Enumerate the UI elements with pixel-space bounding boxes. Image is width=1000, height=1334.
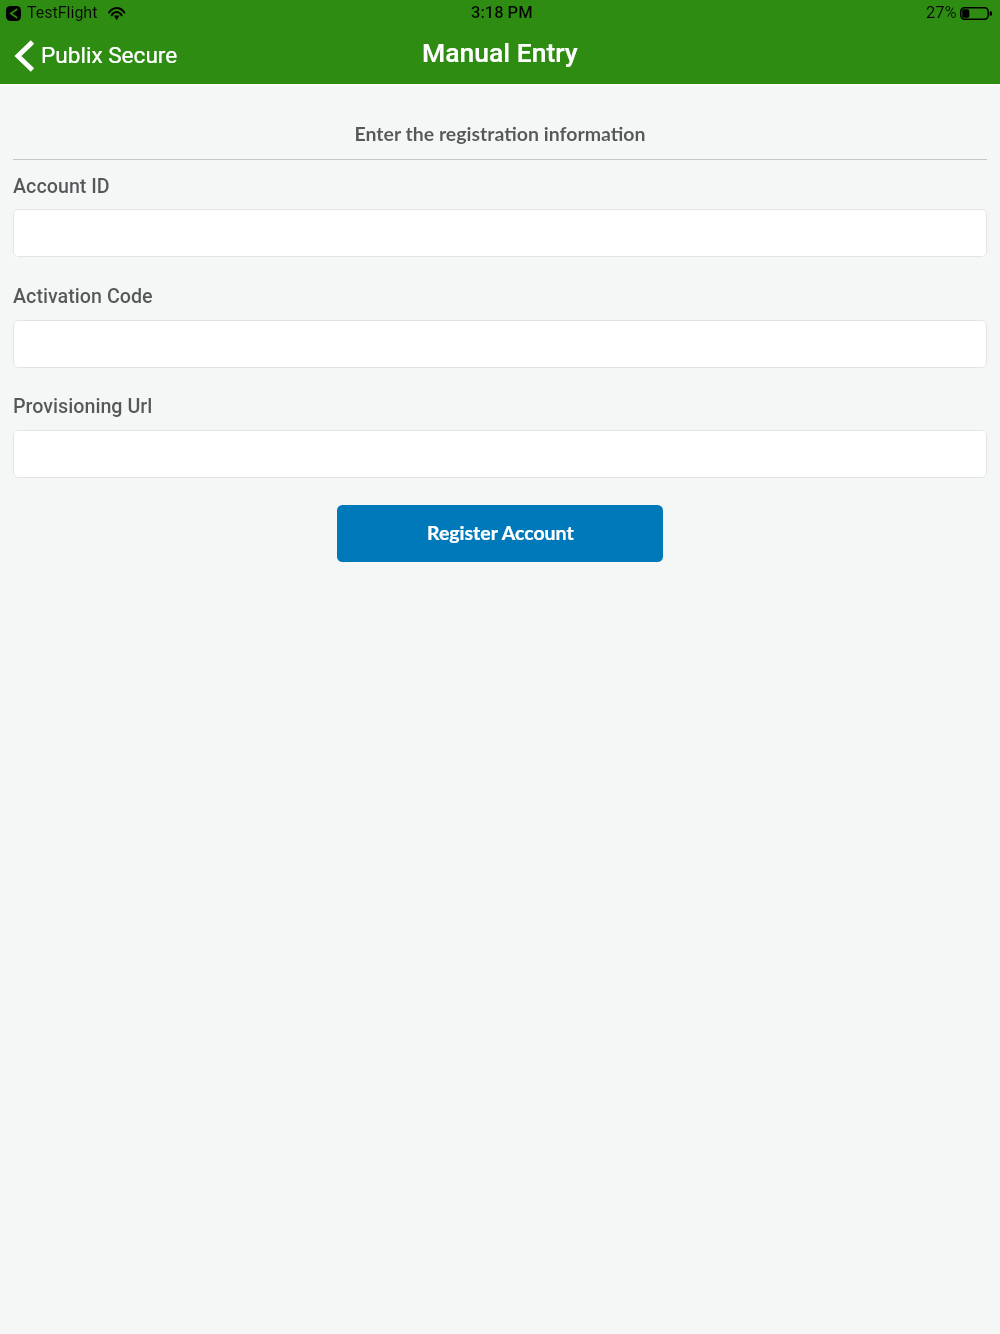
staticText: Publix Secure [41, 42, 178, 68]
button[interactable]: Register Account [337, 505, 663, 562]
staticText: Enter the registration information [13, 122, 987, 145]
button[interactable] [13, 430, 987, 478]
staticText: 27% [926, 3, 957, 22]
button[interactable] [13, 320, 987, 368]
staticText: Provisioning Url [13, 395, 153, 418]
staticText: TestFlight [27, 3, 98, 22]
button[interactable]: Back to TestFlight [6, 6, 21, 21]
staticText: Activation Code [13, 285, 153, 308]
staticText: Register Account [427, 521, 574, 544]
staticText: 3:18 PM [471, 3, 533, 22]
button[interactable] [13, 209, 987, 257]
button[interactable]: Back to Publix Secure [16, 28, 178, 83]
staticText: Manual Entry [422, 37, 578, 68]
staticText: Account ID [13, 175, 110, 198]
